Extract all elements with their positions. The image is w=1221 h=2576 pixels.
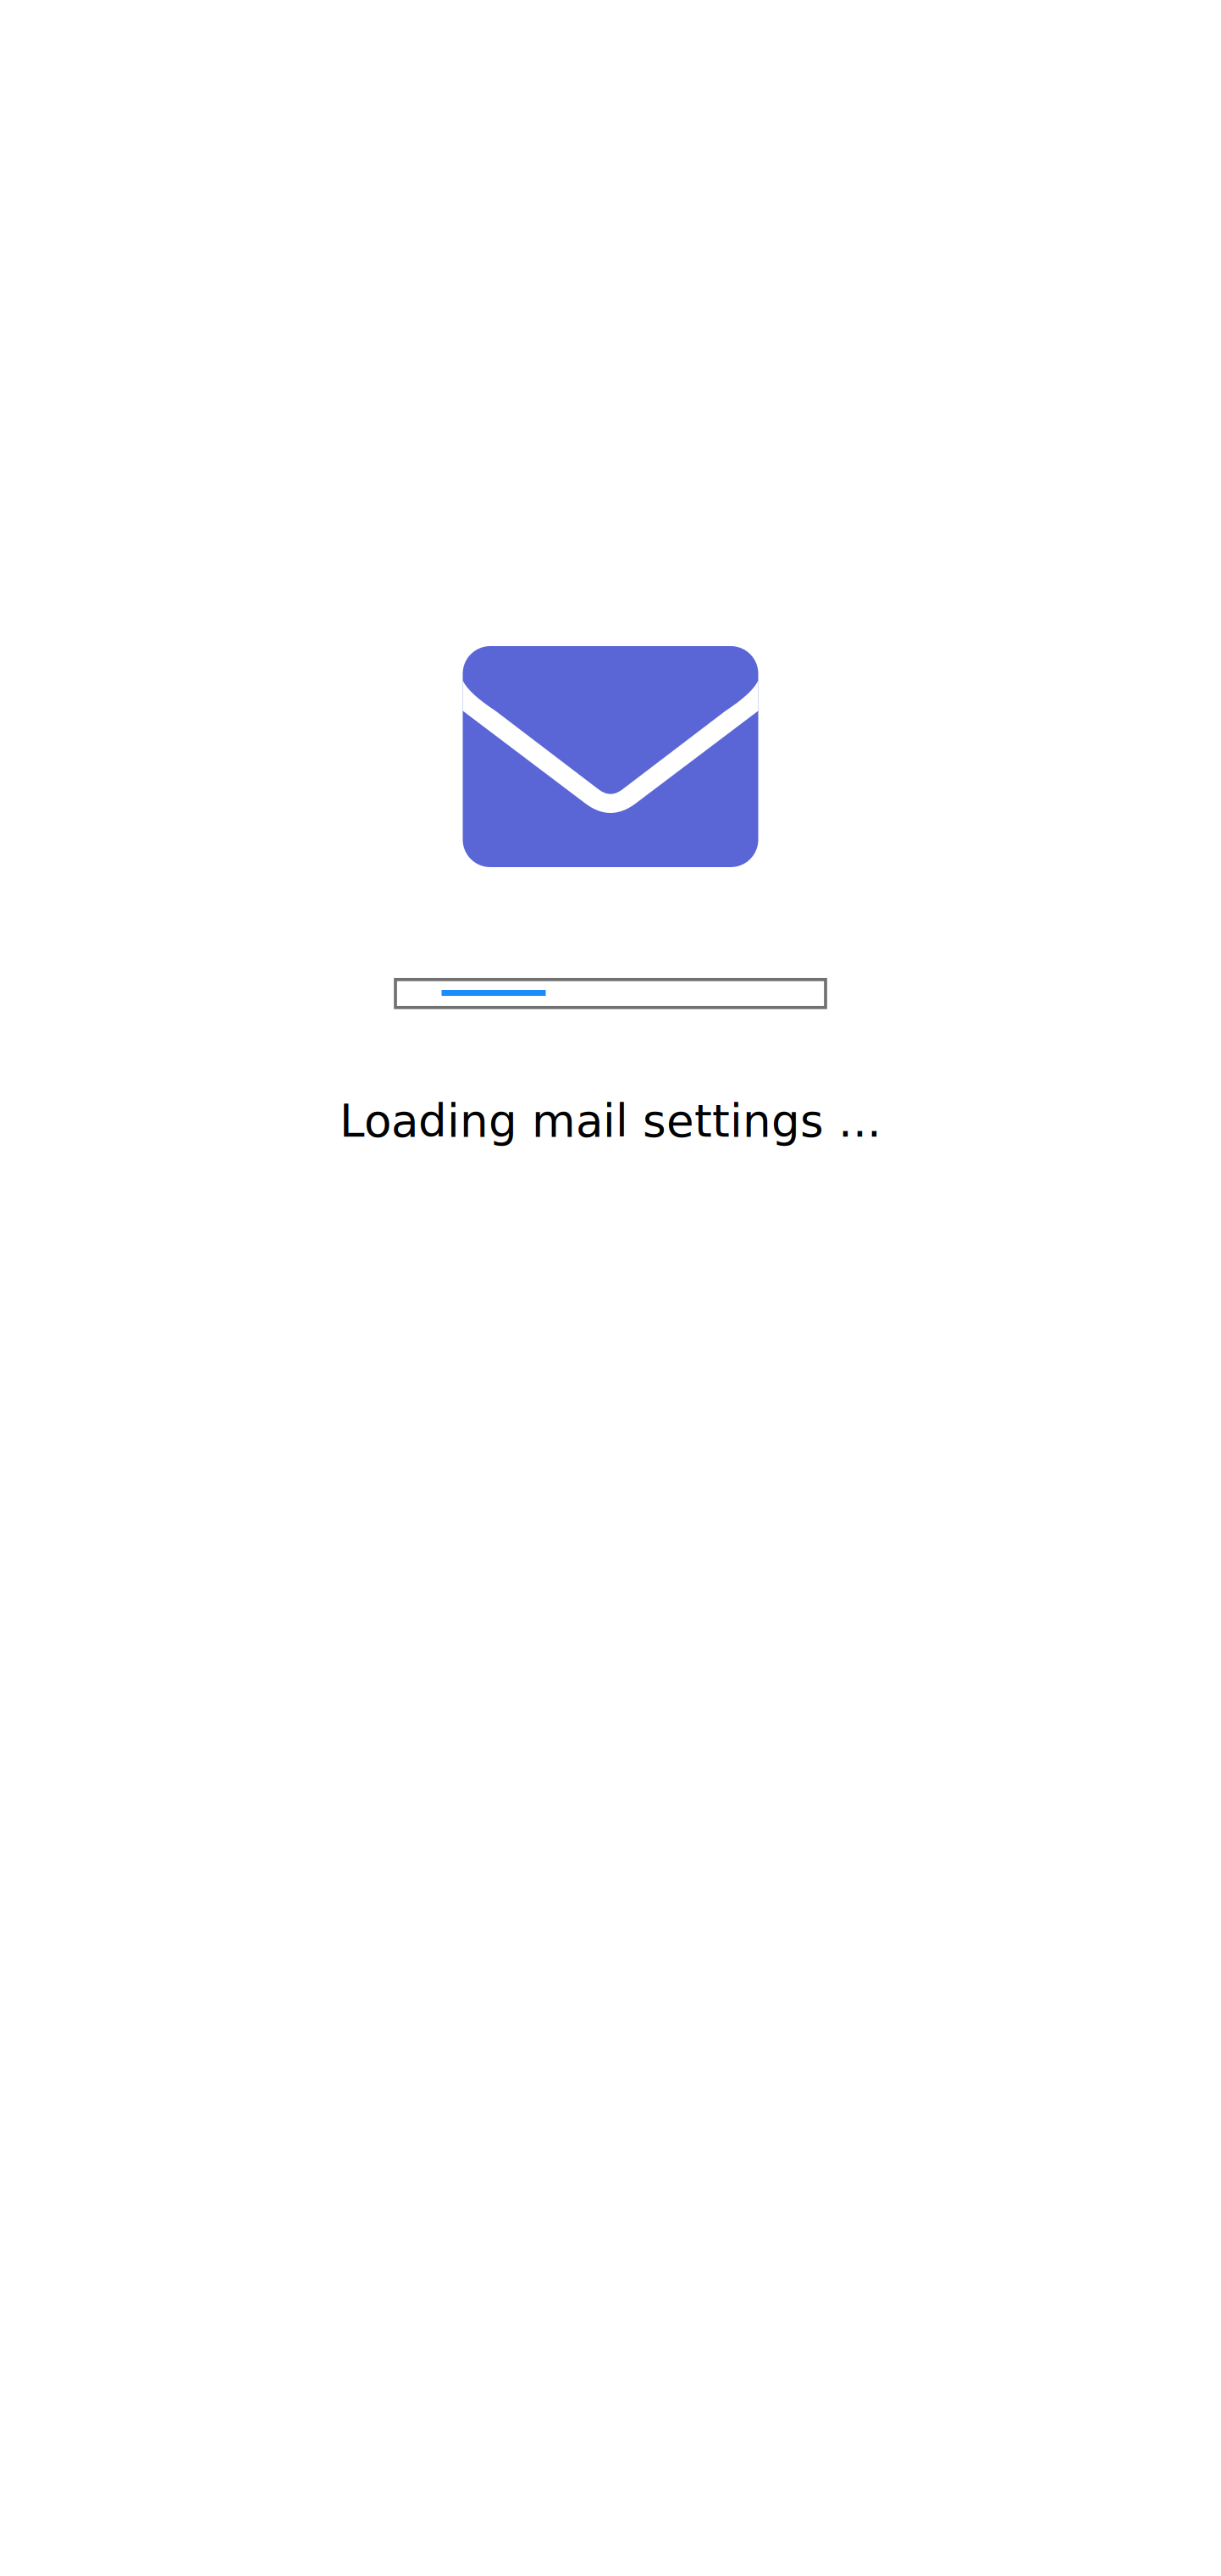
staticText: Loading mail settings ...: [340, 1095, 881, 1147]
